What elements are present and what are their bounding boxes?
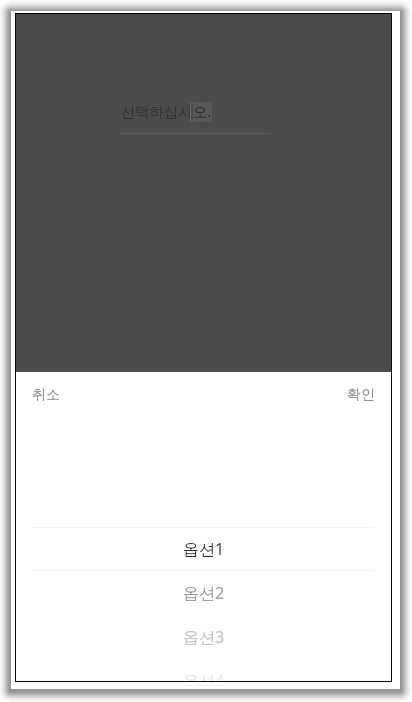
staticText: 옵션4	[183, 670, 225, 681]
staticText: 확인	[347, 386, 375, 404]
button[interactable]: 옵션2	[16, 571, 391, 615]
button[interactable]: 옵션3	[16, 615, 391, 659]
staticText: 옵션1	[183, 538, 225, 560]
button[interactable]: 확인	[331, 372, 391, 418]
staticText: 오.	[193, 102, 212, 122]
button[interactable]: Text field	[119, 99, 271, 134]
staticText: 선택하십시	[121, 103, 193, 121]
staticText: 옵션3	[183, 626, 225, 648]
button[interactable]: 취소	[16, 372, 76, 418]
staticText: 옵션2	[183, 582, 225, 604]
staticText: 취소	[32, 386, 60, 404]
button[interactable]: 옵션1	[16, 528, 391, 570]
